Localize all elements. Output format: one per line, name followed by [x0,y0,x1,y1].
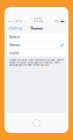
staticText: Choose the colour theme used across the … [9,59,63,67]
button[interactable]: Settings [7,24,23,33]
staticText: Settings [10,27,22,30]
staticText: Carrier [14,20,22,23]
staticText: Default [9,35,20,39]
staticText: Joyful [9,51,19,55]
staticText: 9:41 AM [34,20,43,23]
button[interactable]: Default [7,33,66,41]
staticText: 100% [54,20,59,23]
staticText: Vibrant [9,43,20,47]
staticText: Themes [30,26,43,31]
button[interactable]: Joyful [7,49,66,57]
button[interactable]: Vibrant [7,41,66,49]
